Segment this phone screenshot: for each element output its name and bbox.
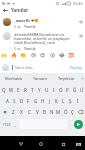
button[interactable]: Emoji 💯 [67,50,76,59]
button[interactable]: Ş [67,95,74,106]
staticText: ❤️🧡 [31,19,39,23]
staticText: Ü [80,87,84,93]
button[interactable]: Q [0,84,8,95]
button[interactable]: Period [68,118,73,130]
button[interactable]: Emoji 😂 [57,50,66,59]
button[interactable]: Emoji 🔥 [10,50,19,59]
staticText: Tamam [33,76,47,81]
button[interactable]: P [64,84,71,95]
button[interactable]: D [18,95,25,106]
staticText: Q [2,87,6,93]
staticText: Ö [64,109,68,115]
button[interactable]: Ç [69,106,76,117]
button[interactable]: Ö [62,106,69,117]
button[interactable]: Paylaş [69,65,83,70]
staticText: Yanıtla [24,24,36,29]
button[interactable]: V [33,106,41,117]
staticText: L [62,98,65,104]
staticText: T [31,87,34,93]
staticText: F [27,98,30,104]
button[interactable]: X [17,106,25,117]
staticText: N [50,109,54,115]
button[interactable]: C [25,106,33,117]
button[interactable]: W [8,84,15,95]
button[interactable]: İ [74,95,81,106]
staticText: denabel8888 Bonathost ve hazırdılar, etk… [14,32,74,45]
staticText: Z [12,109,15,115]
staticText: D [20,98,24,104]
button[interactable]: Tamam [27,73,53,84]
button[interactable]: N [48,106,55,117]
staticText: C [28,109,31,115]
button[interactable]: I [50,84,57,95]
staticText: W [9,87,14,93]
button[interactable]: Recents [57,138,69,150]
button[interactable]: L [60,95,67,106]
button[interactable]: ?123 [0,118,13,130]
staticText: 😢 [31,52,37,58]
button[interactable]: Emoji 👏 [19,50,28,59]
button[interactable]: A [4,95,11,106]
staticText: Merhaba [5,76,22,81]
staticText: I [53,87,55,93]
staticText: ?123 [3,122,11,127]
staticText: P [66,87,69,93]
staticText: 😮 [50,52,56,58]
button[interactable]: H [39,95,46,106]
button[interactable]: E [15,84,22,95]
button[interactable]: O [57,84,64,95]
staticText: M [56,109,61,115]
staticText: 00:46 [73,1,83,6]
button[interactable]: Emoji 🙌 [0,50,9,59]
button[interactable]: Teşekkür [53,73,79,84]
staticText: B [43,109,46,115]
button[interactable]: Ü [78,84,85,95]
staticText: 👏 [20,52,27,58]
button[interactable]: Emoji 😍 [38,50,47,59]
staticText: K [55,98,58,104]
button[interactable]: Ğ [71,84,78,95]
staticText: Yanıtlar [11,7,29,13]
button[interactable]: F [25,95,32,106]
button[interactable]: J [46,95,53,106]
staticText: U [45,87,49,93]
button[interactable]: Hide keyboard [72,138,84,150]
staticText: , [15,122,17,127]
button[interactable]: S [11,95,18,106]
button[interactable]: Back [15,138,27,150]
staticText: H [41,98,45,104]
staticText: A [6,98,9,104]
staticText: G [34,98,38,104]
button[interactable]: M [55,106,62,117]
button[interactable]: B [41,106,48,117]
button[interactable]: Emoji 😮 [48,50,57,59]
staticText: İ [77,98,79,104]
button[interactable]: Comma [13,118,18,130]
button[interactable]: G [32,95,39,106]
button[interactable]: Emoji 😢 [29,50,38,59]
button[interactable]: K [53,95,60,106]
button[interactable]: Merhaba [0,73,27,84]
button[interactable]: R [22,84,29,95]
button[interactable]: Backspace [76,106,85,117]
staticText: Ğ [73,87,77,93]
button[interactable]: T [29,84,36,95]
button[interactable]: More suggestions [79,73,85,84]
button[interactable]: Home [35,138,47,150]
button[interactable]: U [43,84,50,95]
staticText: X [20,109,23,115]
staticText: Yanıt ekle… [15,65,36,70]
button[interactable]: Z [9,106,17,117]
button[interactable]: Back [0,6,11,14]
staticText: Teşekkür [58,76,75,81]
staticText: Y [38,87,41,93]
button[interactable]: Send [74,120,83,129]
staticText: . [70,122,72,127]
button[interactable]: Shift [0,106,9,117]
staticText: Paylaş [70,65,82,70]
staticText: Ç [71,109,74,115]
staticText: V [36,109,39,115]
button[interactable]: Y [36,84,43,95]
staticText: S [13,98,16,104]
